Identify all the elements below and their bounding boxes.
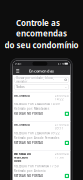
staticText: 27/09/24 09:11 — [55, 123, 69, 130]
button[interactable]: Buscar por unidade, bloco, morador — [15, 77, 68, 82]
staticText: do seu condomínio — [4, 40, 78, 50]
staticText: 28/09/24 14:22 — [55, 94, 69, 101]
staticText: ENTREGA DO MERCADO — [14, 152, 31, 159]
staticText: LIVRE — [14, 160, 21, 163]
button[interactable]: ENTREGA DO MERCADO — [12, 150, 71, 180]
staticText: Retirado por: Antonio — [14, 169, 46, 173]
staticText: Retirado por: Ana de Fernandes — [14, 136, 59, 140]
button[interactable]: Menu — [15, 68, 21, 74]
button[interactable]: ENCOMENDA — [12, 121, 71, 150]
staticText: ENCOMENDA — [14, 123, 30, 126]
staticText: Todos — [16, 85, 24, 89]
staticText: Encomendas — [29, 68, 54, 74]
staticText: RETIRAR NO PORTÃO — [14, 174, 43, 178]
staticText: RECEBIDO POR ZELADORIA 09:22 — [14, 131, 60, 135]
staticText: RETIRAR NO PORTÃO — [14, 112, 43, 115]
staticText: Retirado por: Maria Soares — [14, 107, 49, 110]
button[interactable]: ENCOMENDA — [12, 92, 71, 121]
staticText: RECEBIDO POR PORTARIA 17:50 — [14, 164, 59, 168]
staticText: 9:41 — [15, 62, 22, 65]
staticText: Controle as encomendas — [16, 18, 67, 39]
staticText: ENCOMENDA — [14, 94, 30, 97]
button[interactable]: Todos — [15, 84, 68, 90]
staticText: 26/09/24 17:44 — [55, 152, 69, 159]
staticText: ⌄ — [65, 85, 67, 88]
staticText: Buscar por unidade, bloco, morador — [16, 76, 54, 83]
staticText: 47% — [58, 62, 64, 65]
staticText: RECEBIDO POR ZELADORIA 14:09 — [14, 102, 60, 106]
staticText: RETIRAR NO PORTÃO — [14, 141, 43, 145]
